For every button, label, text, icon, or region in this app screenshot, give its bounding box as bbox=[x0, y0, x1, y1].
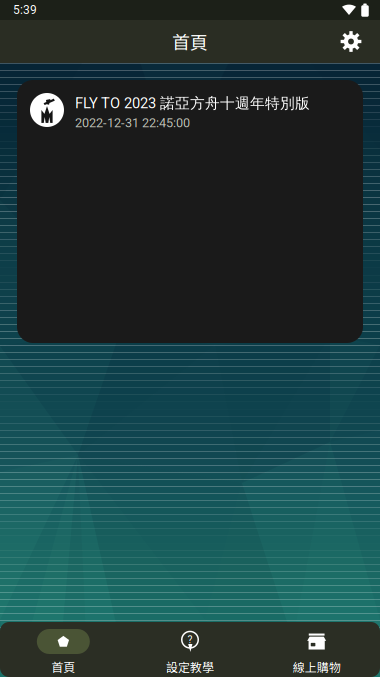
staticText: 設定教學 bbox=[166, 658, 214, 675]
staticText: 5:39 bbox=[13, 3, 37, 17]
staticText: 線上購物 bbox=[293, 658, 341, 675]
button[interactable]: FLY TO 2023 諾亞方舟十週年特別版 bbox=[17, 80, 363, 343]
button[interactable]: 首頁 bbox=[0, 622, 127, 677]
button[interactable]: ? bbox=[127, 622, 253, 677]
staticText: 2022-12-31 22:45:00 bbox=[75, 115, 190, 130]
staticText: ? bbox=[187, 633, 192, 646]
button[interactable]: Settings bbox=[329, 20, 373, 63]
staticText: 首頁 bbox=[51, 658, 75, 675]
staticText: FLY TO 2023 諾亞方舟十週年特別版 bbox=[75, 94, 310, 112]
staticText: 首頁 bbox=[172, 28, 208, 55]
button[interactable]: 線上購物 bbox=[253, 622, 380, 677]
